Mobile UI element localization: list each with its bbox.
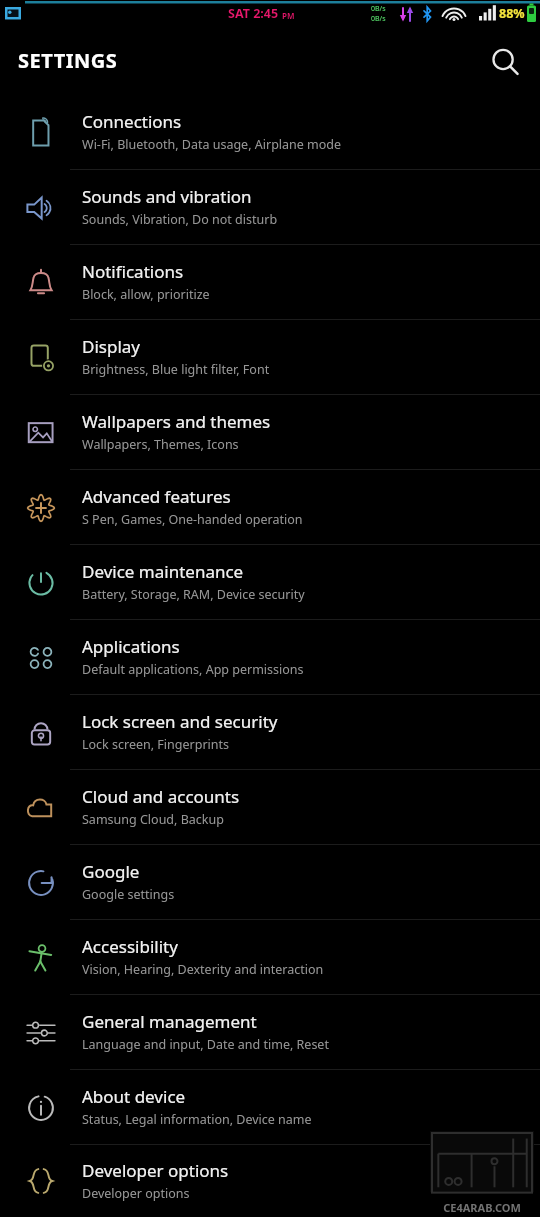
- button[interactable]: About device: [0, 1070, 540, 1145]
- button[interactable]: Google: [0, 845, 540, 920]
- staticText: Lock screen and security: [82, 710, 278, 733]
- button[interactable]: Connections: [0, 95, 540, 170]
- button[interactable]: Advanced features: [0, 470, 540, 545]
- staticText: Google settings: [82, 886, 175, 903]
- button[interactable]: Display: [0, 320, 540, 395]
- staticText: General management: [82, 1010, 257, 1033]
- staticText: CE4ARAB.COM: [443, 1200, 521, 1215]
- staticText: 0B/s: [371, 14, 386, 24]
- staticText: SETTINGS: [18, 47, 118, 74]
- staticText: S Pen, Games, One-handed operation: [82, 511, 303, 528]
- staticText: Applications: [82, 635, 180, 658]
- staticText: PM: [282, 10, 295, 21]
- button[interactable]: Lock screen and security: [0, 695, 540, 770]
- staticText: Sounds, Vibration, Do not disturb: [82, 211, 278, 228]
- staticText: About device: [82, 1085, 186, 1108]
- button[interactable]: Wallpapers and themes: [0, 395, 540, 470]
- staticText: Cloud and accounts: [82, 785, 240, 808]
- staticText: Lock screen, Fingerprints: [82, 736, 230, 753]
- staticText: Samsung Cloud, Backup: [82, 811, 224, 828]
- staticText: Sounds and vibration: [82, 185, 252, 208]
- staticText: Wi-Fi, Bluetooth, Data usage, Airplane m…: [82, 136, 342, 153]
- staticText: Google: [82, 860, 140, 883]
- staticText: Device maintenance: [82, 560, 244, 583]
- staticText: Wallpapers and themes: [82, 410, 271, 433]
- button[interactable]: Device maintenance: [0, 545, 540, 620]
- staticText: Wallpapers, Themes, Icons: [82, 436, 239, 453]
- staticText: Language and input, Date and time, Reset: [82, 1036, 329, 1053]
- staticText: Advanced features: [82, 485, 231, 508]
- button[interactable]: General management: [0, 995, 540, 1070]
- button[interactable]: Developer options: [0, 1145, 540, 1217]
- staticText: Default applications, App permissions: [82, 661, 304, 678]
- staticText: Developer options: [82, 1159, 229, 1182]
- button[interactable]: Sounds and vibration: [0, 170, 540, 245]
- staticText: Block, allow, prioritize: [82, 286, 210, 303]
- staticText: 0B/s: [371, 4, 386, 14]
- staticText: SAT 2:45: [228, 5, 279, 22]
- staticText: Accessibility: [82, 935, 178, 958]
- staticText: 88%: [499, 5, 525, 22]
- staticText: Vision, Hearing, Dexterity and interacti…: [82, 961, 324, 978]
- button[interactable]: Cloud and accounts: [0, 770, 540, 845]
- staticText: Developer options: [82, 1185, 190, 1202]
- button[interactable]: Applications: [0, 620, 540, 695]
- staticText: Status, Legal information, Device name: [82, 1111, 312, 1128]
- staticText: Brightness, Blue light filter, Font: [82, 361, 270, 378]
- button[interactable]: Search: [480, 37, 530, 87]
- staticText: Connections: [82, 110, 182, 133]
- staticText: Battery, Storage, RAM, Device security: [82, 586, 305, 603]
- button[interactable]: Notifications: [0, 245, 540, 320]
- staticText: Notifications: [82, 260, 184, 283]
- staticText: Display: [82, 335, 140, 358]
- button[interactable]: Accessibility: [0, 920, 540, 995]
